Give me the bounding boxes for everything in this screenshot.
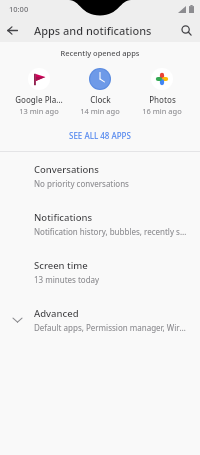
button[interactable]: Google Pla…: [10, 67, 68, 117]
staticText: 13 minutes today: [34, 274, 100, 285]
button[interactable]: Screen time: [0, 248, 200, 296]
button[interactable]: Photos: [133, 67, 191, 117]
button[interactable]: Notifications: [0, 200, 200, 248]
staticText: 16 min ago: [142, 106, 182, 116]
staticText: Default apps, Permission manager, Wirele…: [34, 322, 188, 333]
staticText: 13 min ago: [19, 106, 59, 116]
staticText: Clock: [90, 94, 111, 105]
staticText: Advanced: [34, 307, 79, 320]
button[interactable]: SEE ALL 48 APPS: [0, 127, 200, 144]
button[interactable]: Back: [0, 18, 24, 42]
staticText: SEE ALL 48 APPS: [69, 130, 131, 141]
staticText: 14 min ago: [80, 106, 120, 116]
button[interactable]: Clock: [71, 67, 129, 117]
staticText: Screen time: [34, 259, 88, 272]
staticText: No priority conversations: [34, 178, 129, 189]
staticText: Conversations: [34, 163, 99, 176]
staticText: Notification history, bubbles, recently …: [34, 226, 188, 237]
button[interactable]: Conversations: [0, 152, 200, 200]
button[interactable]: Search: [174, 18, 198, 42]
staticText: Photos: [149, 94, 176, 105]
staticText: Recently opened apps: [0, 48, 200, 58]
staticText: Notifications: [34, 211, 93, 224]
staticText: Apps and notifications: [34, 23, 152, 38]
staticText: 10:00: [9, 4, 29, 14]
staticText: Google Pla…: [15, 94, 63, 105]
button[interactable]: Advanced: [0, 296, 200, 344]
